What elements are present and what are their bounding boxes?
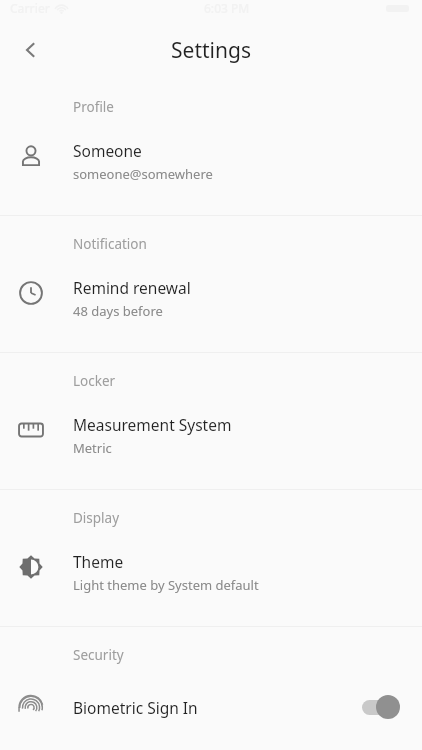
button[interactable]: Notification: [0, 216, 422, 352]
staticText: Theme: [73, 551, 124, 572]
staticText: Display: [73, 509, 120, 527]
button[interactable]: Security: [0, 627, 422, 740]
staticText: Someone: [73, 140, 142, 161]
staticText: Measurement System: [73, 414, 232, 435]
staticText: 48 days before: [73, 302, 163, 320]
staticText: Metric: [73, 439, 112, 457]
button[interactable]: Display: [0, 490, 422, 626]
staticText: Notification: [73, 235, 147, 253]
button[interactable]: Locker: [0, 353, 422, 489]
staticText: Locker: [73, 372, 116, 390]
staticText: Remind renewal: [73, 277, 191, 298]
staticText: someone@somewhere: [73, 165, 213, 183]
button[interactable]: Profile: [0, 78, 422, 215]
button[interactable]: Biometric Sign In toggle: [356, 694, 402, 720]
button[interactable]: Back: [10, 29, 52, 71]
staticText: Light theme by System default: [73, 576, 259, 594]
staticText: Biometric Sign In: [73, 697, 198, 718]
staticText: Profile: [73, 98, 114, 116]
staticText: Settings: [171, 36, 251, 65]
staticText: Security: [73, 646, 124, 664]
